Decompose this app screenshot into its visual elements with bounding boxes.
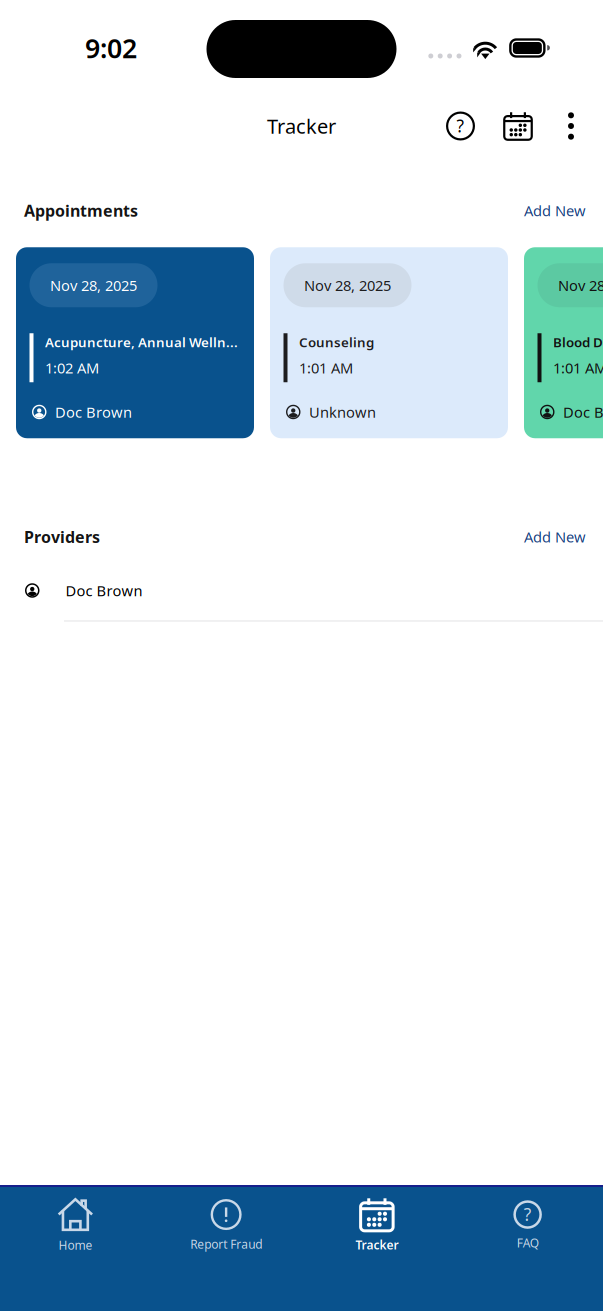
staticText: Add New bbox=[524, 527, 586, 547]
staticText: Tracker bbox=[355, 1237, 398, 1253]
staticText: Unknown bbox=[309, 402, 376, 422]
staticText: Acupuncture, Annual Welln... bbox=[45, 333, 238, 351]
staticText: 1:01 AM bbox=[299, 358, 353, 377]
button[interactable]: Nov 28, 2025 bbox=[270, 247, 508, 438]
staticText: Nov 28, 2025 bbox=[50, 275, 137, 295]
button[interactable]: Add New bbox=[524, 527, 586, 547]
staticText: Blood Draw bbox=[553, 333, 603, 351]
staticText: 1:01 AM bbox=[553, 358, 603, 377]
button[interactable]: Tracker bbox=[301, 1198, 452, 1253]
button[interactable]: Doc Brown bbox=[0, 582, 603, 621]
button[interactable]: Add New bbox=[524, 201, 586, 220]
staticText: Add New bbox=[524, 201, 586, 220]
staticText: Providers bbox=[24, 526, 100, 547]
staticText: Doc Brown bbox=[65, 581, 142, 600]
button[interactable]: Nov 28, 2025 bbox=[524, 247, 603, 438]
staticText: Report Fraud bbox=[190, 1236, 262, 1252]
staticText: Home bbox=[58, 1237, 92, 1253]
button[interactable]: Calendar bbox=[496, 104, 540, 148]
button[interactable]: Home bbox=[0, 1198, 151, 1253]
button[interactable]: More options bbox=[553, 104, 589, 148]
staticText: ? bbox=[524, 1203, 532, 1226]
staticText: 1:02 AM bbox=[45, 358, 99, 377]
staticText: FAQ bbox=[517, 1235, 539, 1251]
staticText: 9:02 bbox=[85, 30, 137, 66]
button[interactable]: Report Fraud bbox=[151, 1199, 302, 1252]
staticText: Counseling bbox=[299, 333, 374, 351]
staticText: Appointments bbox=[24, 200, 138, 221]
button[interactable]: Nov 28, 2025 bbox=[16, 247, 254, 438]
button[interactable]: Help bbox=[438, 104, 482, 148]
button[interactable]: ? bbox=[452, 1200, 603, 1251]
staticText: ? bbox=[456, 114, 464, 137]
staticText: Nov 28, 2025 bbox=[558, 275, 603, 295]
staticText: Doc Brown bbox=[55, 402, 132, 422]
staticText: Nov 28, 2025 bbox=[304, 275, 391, 295]
staticText: Tracker bbox=[267, 113, 336, 139]
staticText: Doc Brown bbox=[563, 402, 603, 422]
